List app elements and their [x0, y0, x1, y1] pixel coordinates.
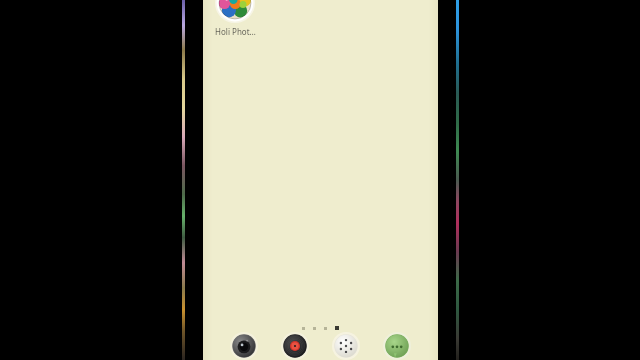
button[interactable]: Camera — [219, 326, 269, 360]
button[interactable]: All apps — [320, 326, 371, 360]
button[interactable]: Messaging — [371, 326, 422, 360]
staticText: Holi Phot… — [215, 26, 256, 37]
button[interactable]: Holi Phot… — [209, 0, 261, 37]
button[interactable]: Music player — [269, 326, 320, 360]
